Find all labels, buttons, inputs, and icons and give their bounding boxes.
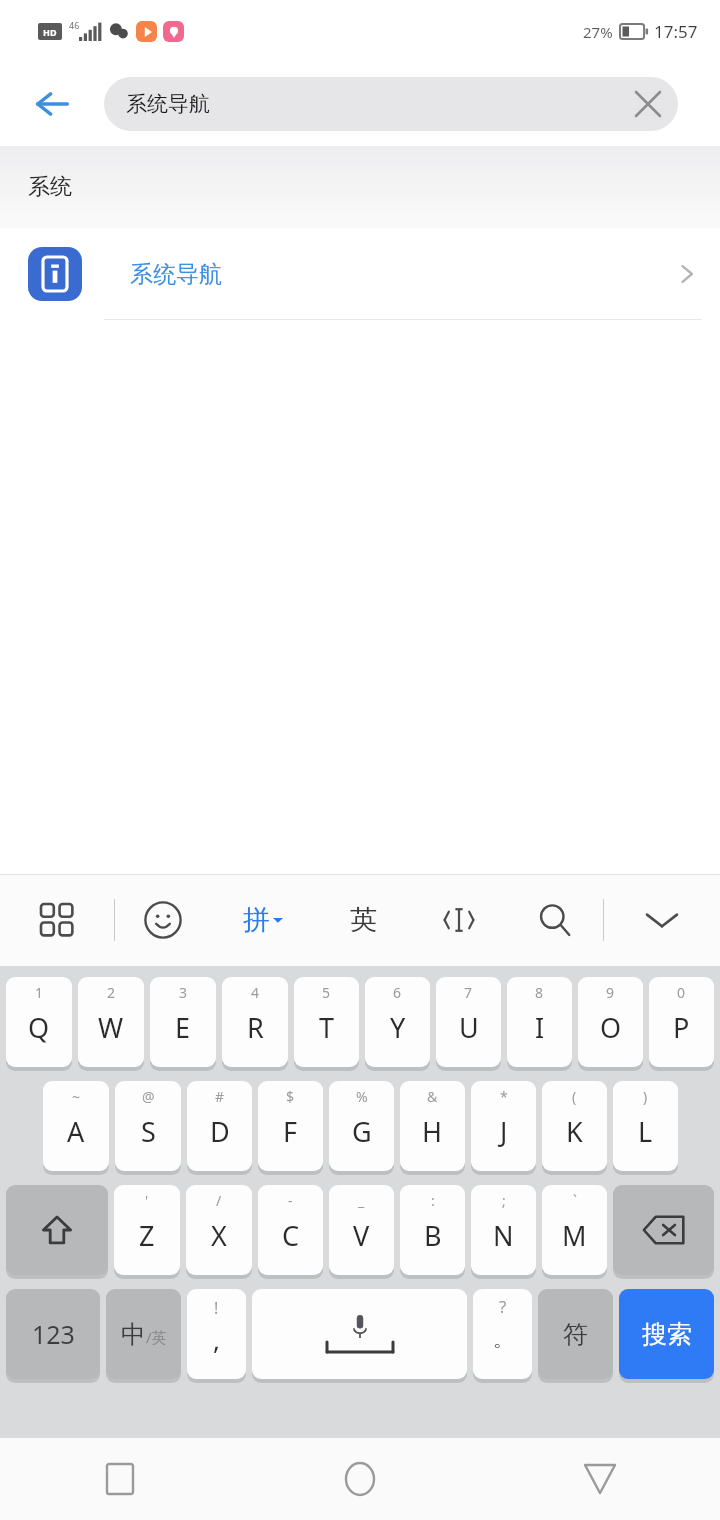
staticText: J <box>500 1113 508 1150</box>
staticText: Q <box>28 1009 50 1046</box>
button[interactable]: Home <box>240 1438 480 1520</box>
staticText: 5 <box>322 983 331 1002</box>
button[interactable] <box>613 1185 714 1275</box>
staticText: 3 <box>179 983 188 1002</box>
button[interactable]: 中 <box>106 1289 181 1379</box>
staticText: 。 <box>493 1327 513 1352</box>
button[interactable]: $ <box>258 1081 323 1171</box>
button[interactable]: # <box>187 1081 252 1171</box>
staticText: R <box>247 1009 264 1046</box>
button[interactable]: Recents <box>0 1438 240 1520</box>
button[interactable]: * <box>471 1081 536 1171</box>
button[interactable]: 8 <box>507 977 572 1067</box>
button[interactable]: - <box>258 1185 323 1275</box>
button[interactable]: Emoji <box>115 874 211 966</box>
button[interactable]: 9 <box>578 977 643 1067</box>
button[interactable]: Back <box>480 1438 720 1520</box>
staticText: D <box>210 1113 230 1150</box>
staticText: F <box>283 1113 298 1150</box>
staticText: ) <box>643 1087 648 1106</box>
staticText: 8 <box>535 983 544 1002</box>
staticText: 27% <box>583 22 613 42</box>
staticText: L <box>638 1113 653 1150</box>
button[interactable]: ? <box>473 1289 532 1379</box>
staticText: I <box>535 1009 545 1046</box>
staticText: ! <box>214 1297 219 1319</box>
button[interactable]: : <box>400 1185 465 1275</box>
staticText: 中 <box>121 1319 146 1350</box>
staticText: H <box>422 1113 443 1150</box>
button[interactable]: Keyboard modes <box>0 874 114 966</box>
button[interactable]: ` <box>542 1185 607 1275</box>
staticText: 9 <box>606 983 615 1002</box>
staticText: 6 <box>393 983 402 1002</box>
button[interactable]: 系统导航 <box>104 77 678 131</box>
staticText: ; <box>502 1191 506 1210</box>
staticText: _ <box>358 1191 365 1210</box>
button[interactable]: 7 <box>436 977 501 1067</box>
staticText: E <box>175 1009 191 1046</box>
staticText: 123 <box>32 1317 75 1351</box>
staticText: 17:57 <box>654 20 698 43</box>
button[interactable]: ; <box>471 1185 536 1275</box>
button[interactable]: Move cursor <box>411 874 507 966</box>
staticText: 系统 <box>28 173 72 201</box>
button[interactable]: Search <box>507 874 603 966</box>
button[interactable]: ! <box>187 1289 246 1379</box>
staticText: A <box>67 1113 85 1150</box>
button[interactable]: 搜索 <box>619 1289 714 1379</box>
staticText: : <box>431 1191 435 1210</box>
staticText: N <box>493 1217 514 1254</box>
staticText: 4 <box>251 983 260 1002</box>
button[interactable]: ( <box>542 1081 607 1171</box>
button[interactable]: & <box>400 1081 465 1171</box>
button[interactable]: ~ <box>43 1081 109 1171</box>
staticText: @ <box>142 1087 155 1106</box>
staticText: $ <box>286 1087 295 1106</box>
button[interactable]: ) <box>613 1081 678 1171</box>
staticText: X <box>211 1217 227 1254</box>
staticText: C <box>282 1217 300 1254</box>
button[interactable] <box>6 1185 108 1275</box>
button[interactable]: Back <box>0 62 104 146</box>
button[interactable]: 3 <box>150 977 216 1067</box>
button[interactable]: 符 <box>538 1289 613 1379</box>
staticText: Z <box>139 1217 155 1254</box>
button[interactable]: 5 <box>294 977 359 1067</box>
staticText: 2 <box>107 983 116 1002</box>
button[interactable]: 拼 <box>211 874 315 966</box>
staticText: 拼 <box>243 903 270 937</box>
staticText: 0 <box>677 983 686 1002</box>
staticText: /英 <box>146 1327 167 1347</box>
button[interactable]: Clear <box>618 77 678 131</box>
staticText: & <box>427 1087 438 1106</box>
button[interactable]: 4 <box>222 977 288 1067</box>
staticText: Y <box>390 1009 406 1046</box>
staticText: - <box>288 1191 293 1210</box>
staticText: W <box>98 1009 124 1046</box>
staticText: ( <box>572 1087 577 1106</box>
staticText: 1 <box>35 983 44 1002</box>
button[interactable]: ' <box>114 1185 180 1275</box>
staticText: ? <box>499 1295 507 1318</box>
button[interactable] <box>252 1289 467 1379</box>
button[interactable]: _ <box>329 1185 394 1275</box>
staticText: G <box>352 1113 372 1150</box>
button[interactable]: 2 <box>78 977 144 1067</box>
button[interactable]: 0 <box>649 977 714 1067</box>
button[interactable]: 6 <box>365 977 430 1067</box>
button[interactable]: 英 <box>315 874 411 966</box>
button[interactable]: Hide keyboard <box>604 874 720 966</box>
staticText: 搜索 <box>642 1319 692 1350</box>
button[interactable]: % <box>329 1081 394 1171</box>
button[interactable]: 123 <box>6 1289 100 1379</box>
button[interactable]: 1 <box>6 977 72 1067</box>
button[interactable]: / <box>186 1185 252 1275</box>
staticText: V <box>353 1217 370 1254</box>
button[interactable]: @ <box>115 1081 181 1171</box>
staticText: 系统导航 <box>130 260 222 289</box>
staticText: # <box>215 1087 225 1106</box>
staticText: 7 <box>464 983 473 1002</box>
staticText: ~ <box>72 1087 81 1106</box>
button[interactable]: 系统导航 <box>0 228 720 320</box>
